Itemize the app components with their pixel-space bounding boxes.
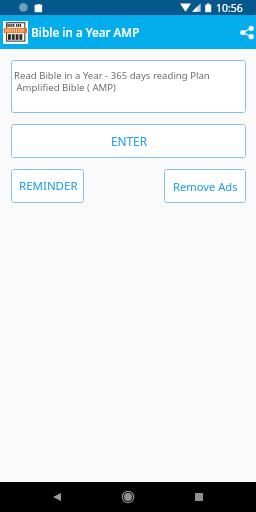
staticText: REMINDER (19, 178, 78, 194)
button[interactable]: Home (106, 482, 150, 512)
button[interactable]: REMINDER (11, 169, 84, 203)
button[interactable]: Recent apps (177, 482, 221, 512)
button[interactable]: Remove Ads (164, 169, 246, 203)
staticText: Bible in a Year AMP (31, 24, 140, 40)
staticText: Remove Ads (173, 179, 238, 194)
staticText: 10:56 (216, 1, 243, 15)
button[interactable]: Share (233, 18, 256, 46)
button[interactable]: ENTER (11, 124, 246, 158)
button[interactable]: Back (35, 482, 79, 512)
staticText: ENTER (111, 133, 147, 149)
staticText: Read Bible in a Year - 365 days reading … (14, 69, 210, 94)
